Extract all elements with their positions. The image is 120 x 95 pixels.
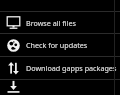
- button[interactable]: Download gapps packages: [0, 57, 120, 79]
- staticText: Check for updates: [26, 40, 88, 50]
- button[interactable]: [0, 80, 120, 95]
- staticText: Browse all files: [26, 18, 77, 28]
- button[interactable]: Check for updates: [0, 34, 120, 56]
- staticText: Download gapps packages: [26, 63, 117, 73]
- button[interactable]: Browse all files: [0, 12, 120, 33]
